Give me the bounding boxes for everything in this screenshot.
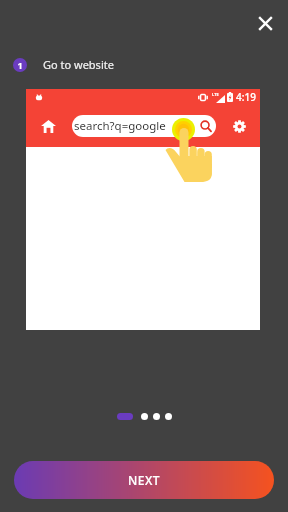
button[interactable]: NEXT [14,461,274,499]
staticText: LTE [212,92,219,97]
staticText: Go to website [43,57,114,72]
button[interactable]: Home [37,115,59,137]
staticText: search?q=google [74,118,166,134]
button[interactable]: Settings [228,115,250,137]
button[interactable]: Close [249,7,281,39]
staticText: NEXT [128,472,161,488]
button[interactable]: 1 [13,57,288,72]
button[interactable]: search?q=google [72,115,216,137]
staticText: 1 [17,59,23,71]
staticText: 4:19 [236,90,256,104]
